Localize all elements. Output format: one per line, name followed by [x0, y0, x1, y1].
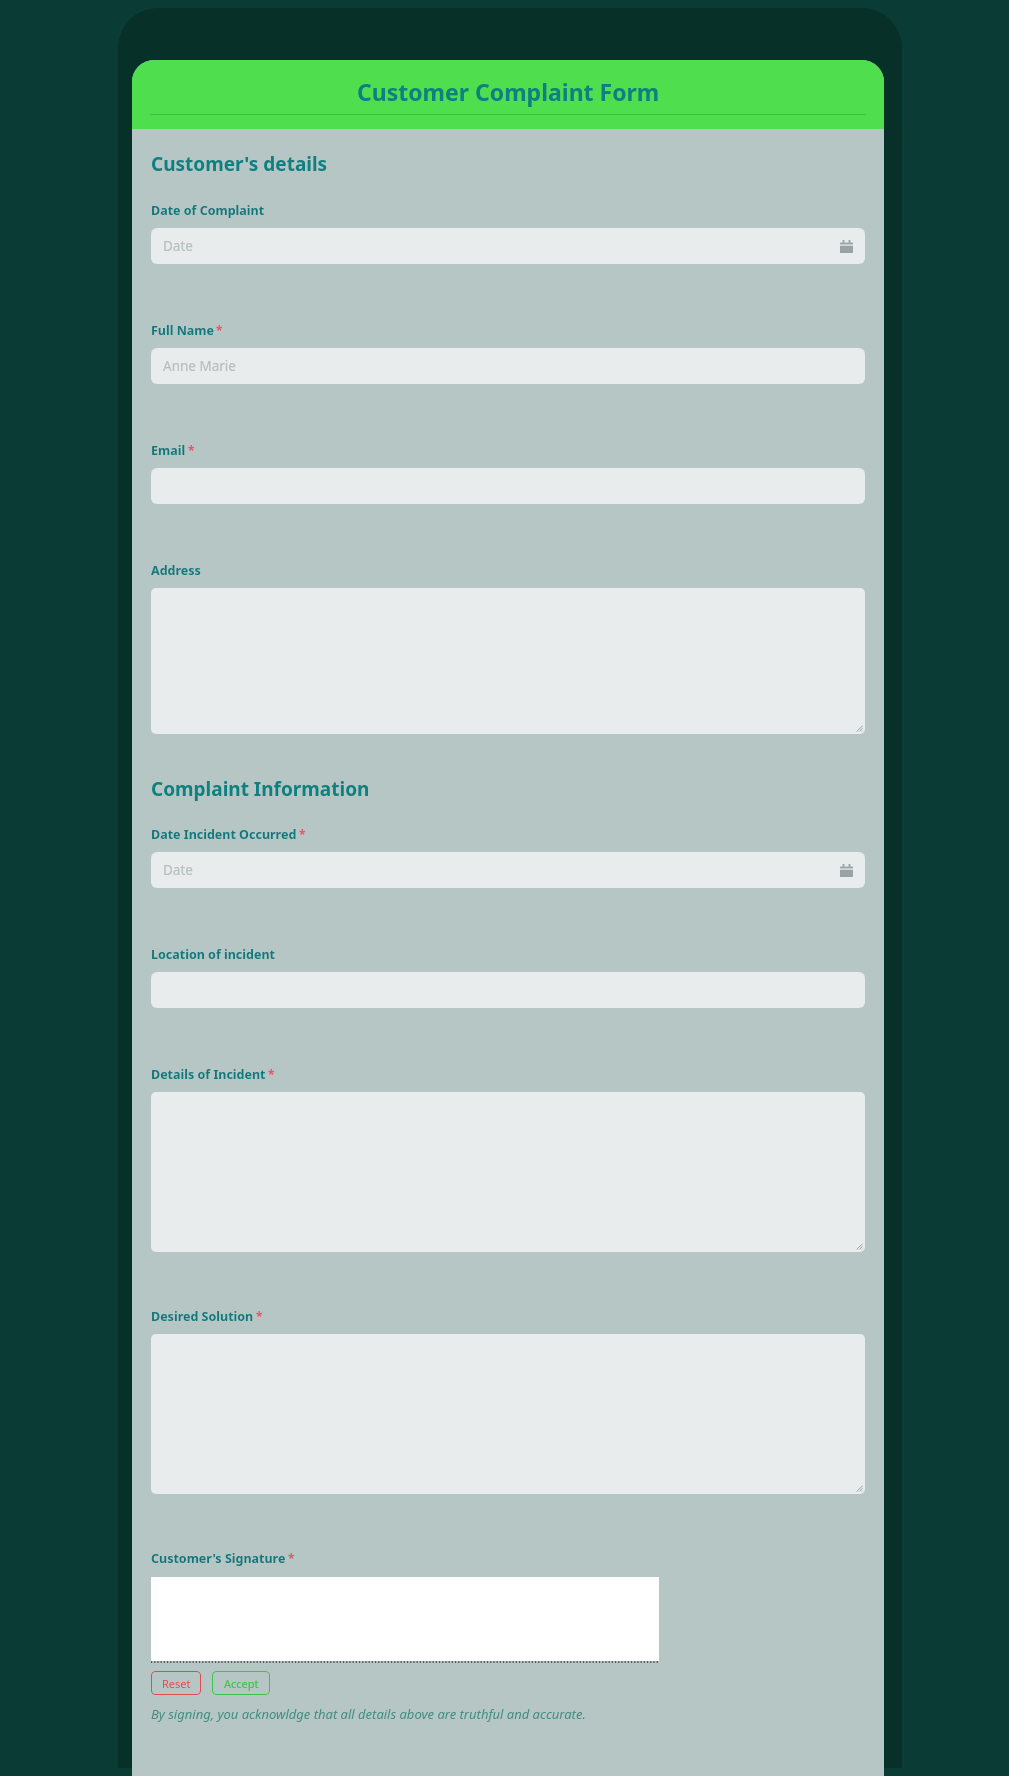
staticText: *	[268, 1066, 275, 1082]
staticText: Anne Marie	[163, 357, 236, 375]
staticText: Customer Complaint Form	[357, 76, 660, 107]
staticText: Full Name	[151, 322, 214, 339]
button[interactable]: Anne Marie	[151, 348, 865, 384]
staticText: Customer's Signature	[151, 1550, 286, 1567]
staticText: *	[288, 1550, 295, 1566]
staticText: *	[188, 442, 195, 458]
staticText: Accept	[224, 1676, 259, 1691]
staticText: *	[216, 322, 223, 338]
button[interactable]: Accept	[212, 1671, 270, 1695]
staticText: Date Incident Occurred	[151, 826, 297, 843]
staticText: Complaint Information	[151, 776, 370, 802]
button[interactable]: Reset	[151, 1671, 201, 1695]
staticText: Address	[151, 562, 201, 579]
staticText: Customer's details	[151, 151, 328, 177]
staticText: Reset	[162, 1676, 191, 1691]
staticText: Date	[163, 237, 193, 255]
button[interactable]: Pick date	[151, 228, 865, 264]
staticText: Location of incident	[151, 946, 275, 963]
staticText: Date	[163, 861, 193, 879]
staticText: By signing, you acknowldge that all deta…	[151, 1705, 586, 1723]
button[interactable]: Pick date	[151, 852, 865, 888]
staticText: Details of Incident	[151, 1066, 266, 1083]
staticText: Email	[151, 442, 186, 459]
staticText: *	[256, 1308, 263, 1324]
staticText: Date of Complaint	[151, 202, 265, 219]
staticText: *	[299, 826, 306, 842]
staticText: Desired Solution	[151, 1308, 254, 1325]
